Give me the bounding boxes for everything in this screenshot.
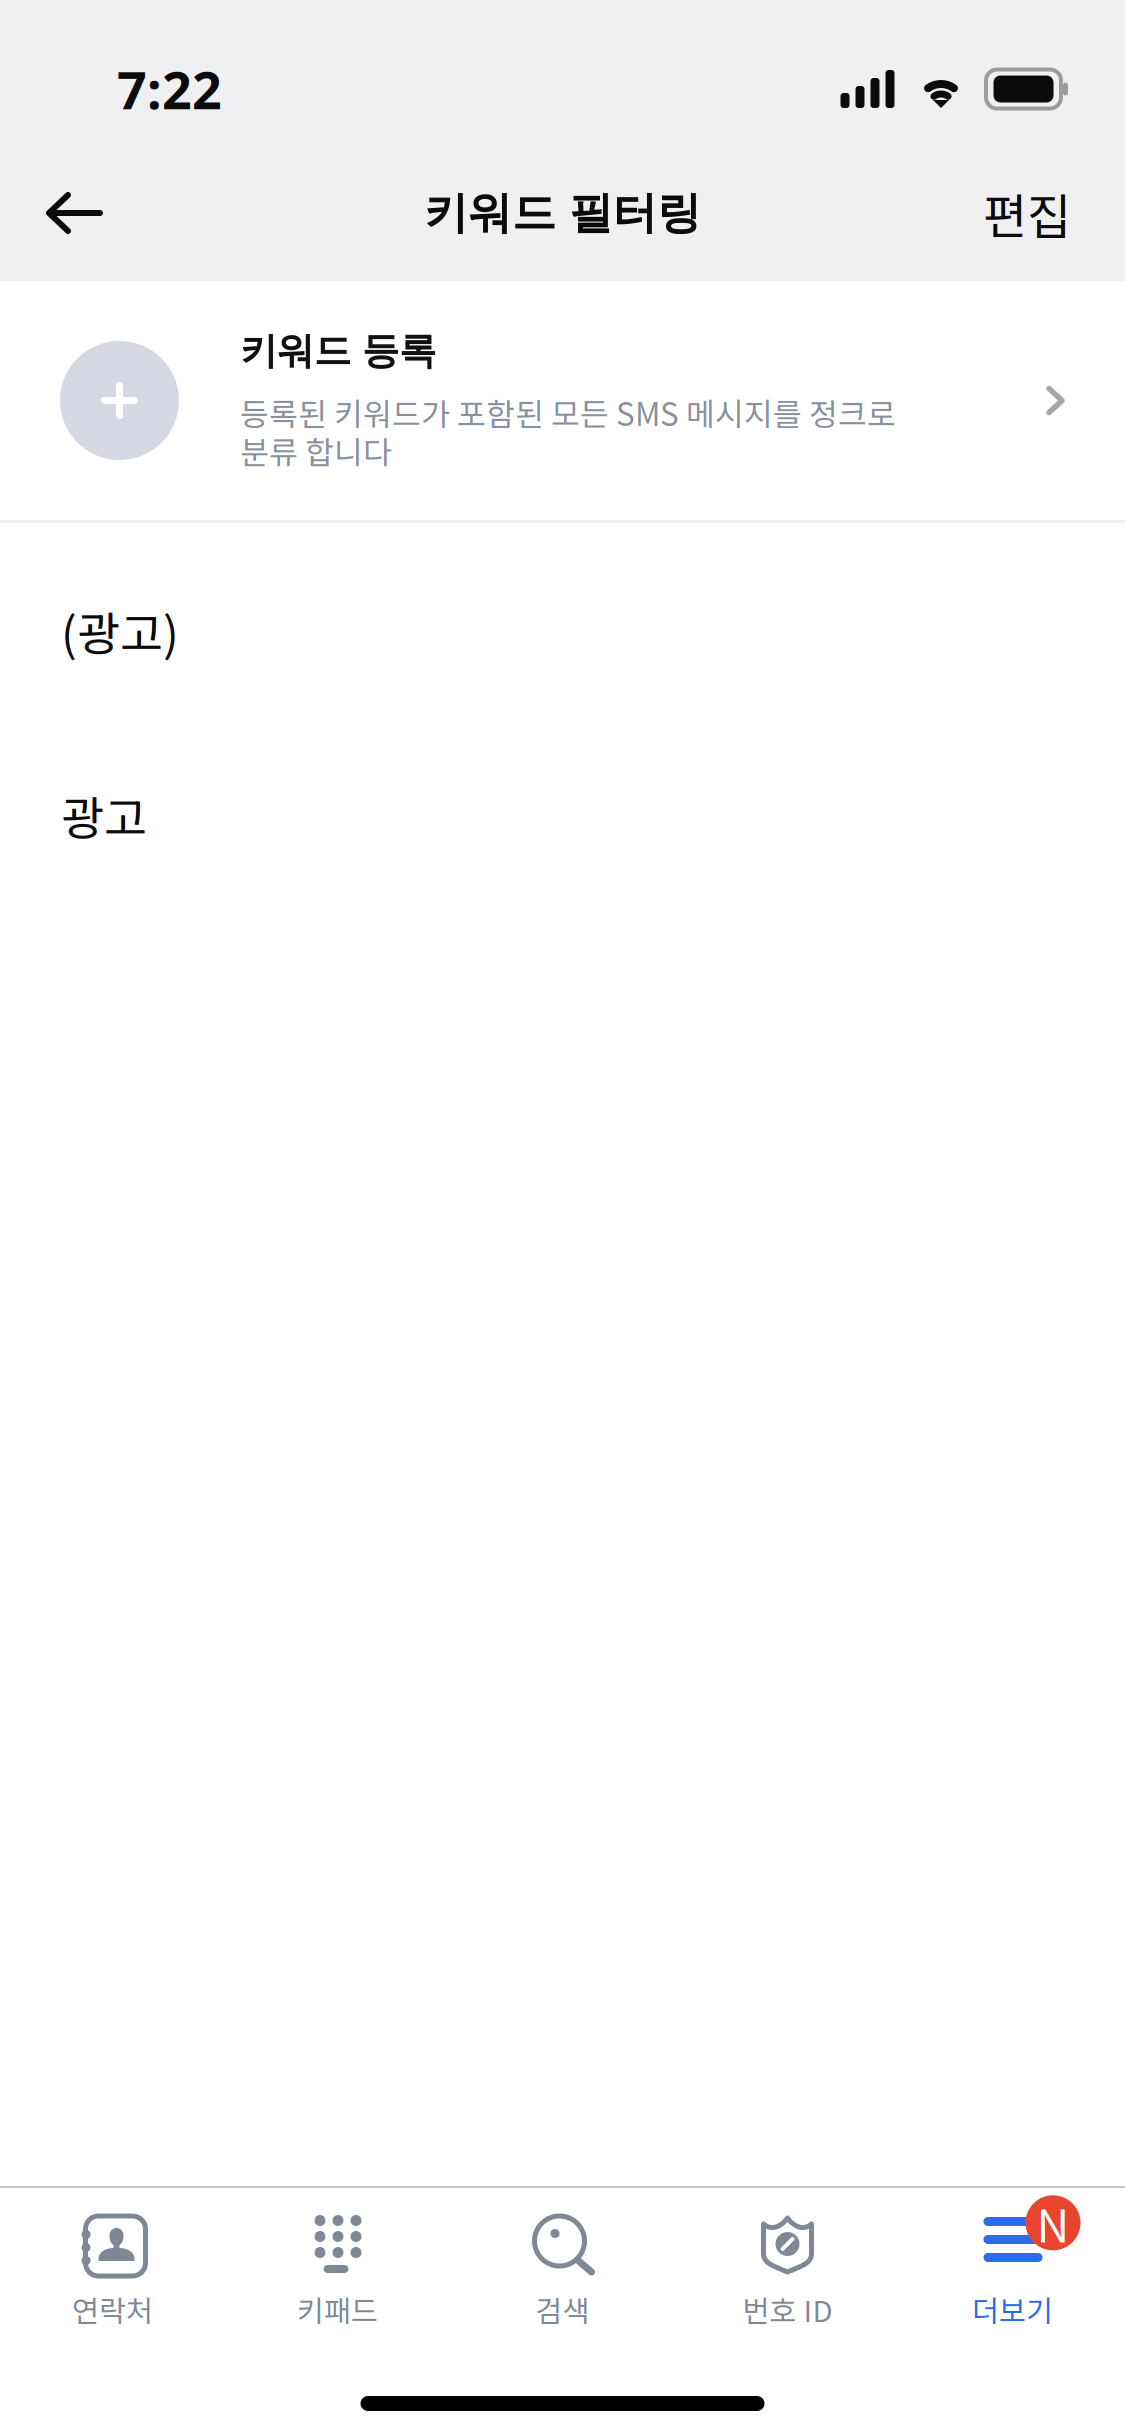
staticText: 키워드 필터링 [424, 185, 701, 241]
staticText: 광고 [61, 782, 147, 849]
staticText: 등록된 키워드가 포함된 모든 SMS 메시지를 정크로 분류 합니다 [240, 390, 896, 473]
button[interactable]: 편집 [956, 156, 1098, 270]
button[interactable]: 키패드 [225, 2188, 450, 2363]
staticText: 더보기 [972, 2288, 1053, 2330]
button[interactable]: 키워드 등록 [0, 281, 1125, 520]
staticText: 키패드 [297, 2288, 378, 2330]
button[interactable]: N [900, 2188, 1125, 2363]
button[interactable]: 연락처 [0, 2188, 225, 2363]
button[interactable]: 번호 ID [675, 2188, 900, 2363]
staticText: N [1036, 2190, 1069, 2256]
staticText: 편집 [983, 178, 1071, 248]
staticText: (광고) [61, 597, 179, 665]
button[interactable]: 뒤로 [22, 166, 127, 260]
button[interactable]: 검색 [450, 2188, 675, 2363]
staticText: 키워드 등록 [240, 328, 436, 375]
staticText: 연락처 [72, 2288, 153, 2330]
staticText: 검색 [535, 2288, 589, 2330]
staticText: 7:22 [117, 54, 222, 124]
staticText: 번호 ID [742, 2288, 832, 2330]
